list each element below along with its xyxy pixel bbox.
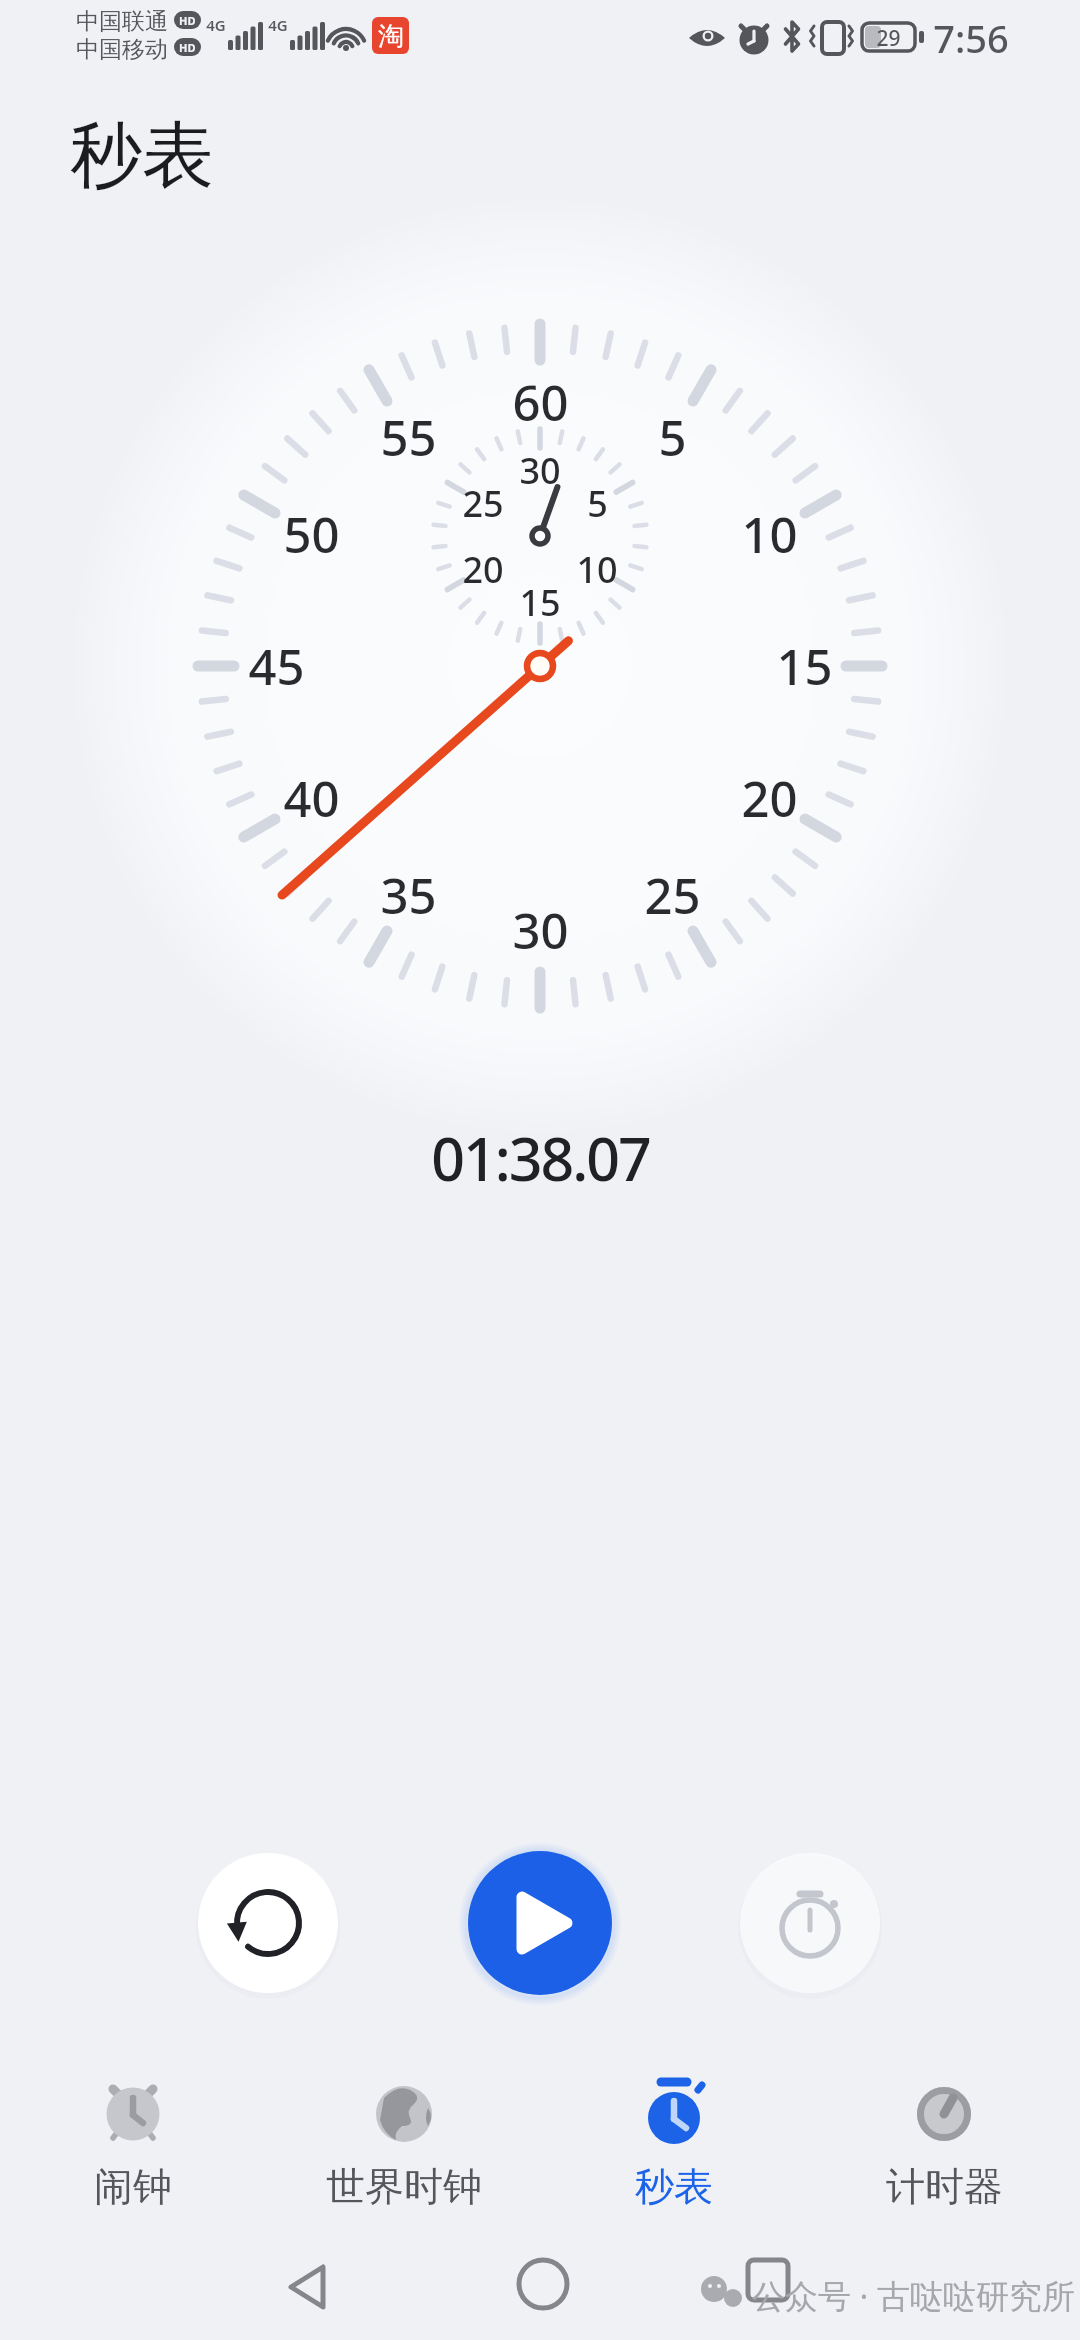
staticText: 20 — [741, 765, 798, 832]
staticText: 10 — [576, 545, 618, 594]
staticText: 4G — [268, 15, 288, 35]
staticText: 30 — [519, 446, 561, 495]
staticText: 30 — [512, 897, 569, 964]
staticText: 25 — [644, 862, 701, 929]
staticText: 60 — [512, 369, 569, 436]
staticText: 35 — [380, 862, 437, 929]
staticText: 20 — [462, 545, 504, 594]
staticText: 55 — [380, 404, 437, 471]
staticText: 7:56 — [933, 12, 1009, 62]
staticText: 25 — [462, 479, 504, 528]
staticText: 5 — [658, 404, 687, 471]
staticText: 秒表 — [70, 111, 214, 202]
staticText: 计时器 — [886, 2162, 1003, 2211]
button[interactable] — [198, 1853, 338, 1993]
button[interactable] — [468, 1851, 612, 1995]
staticText: 15 — [776, 633, 833, 700]
staticText: 秒表 — [635, 2162, 713, 2211]
staticText: 10 — [741, 501, 798, 568]
button[interactable] — [63, 2075, 203, 2225]
staticText: 45 — [248, 633, 305, 700]
staticText: HD — [179, 40, 196, 55]
button[interactable] — [604, 2075, 744, 2225]
button[interactable] — [864, 2075, 1024, 2225]
staticText: 中国联通 — [76, 7, 168, 36]
staticText: 5 — [587, 479, 608, 528]
staticText: 29 — [876, 24, 901, 53]
staticText: 15 — [519, 578, 561, 627]
staticText: 公众号 · 古哒哒研究所 — [752, 2273, 1076, 2318]
staticText: 01:38.07 — [431, 1118, 650, 1198]
staticText: 闹钟 — [94, 2162, 172, 2211]
staticText: HD — [179, 13, 196, 28]
staticText: 淘 — [378, 20, 404, 53]
staticText: 40 — [283, 765, 340, 832]
button[interactable] — [740, 1853, 880, 1993]
staticText: 中国移动 — [76, 35, 168, 64]
staticText: 4G — [206, 15, 226, 35]
button[interactable] — [314, 2075, 494, 2225]
staticText: 世界时钟 — [326, 2162, 482, 2211]
staticText: 50 — [283, 501, 340, 568]
